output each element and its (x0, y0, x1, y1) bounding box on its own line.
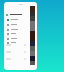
button[interactable] (6, 17, 30, 22)
button[interactable] (6, 27, 30, 32)
button[interactable] (5, 57, 32, 61)
button[interactable] (6, 31, 30, 36)
button[interactable] (6, 36, 30, 41)
button[interactable]: Photos (30, 6, 35, 65)
button[interactable] (5, 50, 32, 54)
button[interactable] (6, 22, 30, 27)
button[interactable] (6, 40, 30, 45)
button[interactable] (5, 43, 32, 47)
button[interactable] (6, 12, 28, 17)
